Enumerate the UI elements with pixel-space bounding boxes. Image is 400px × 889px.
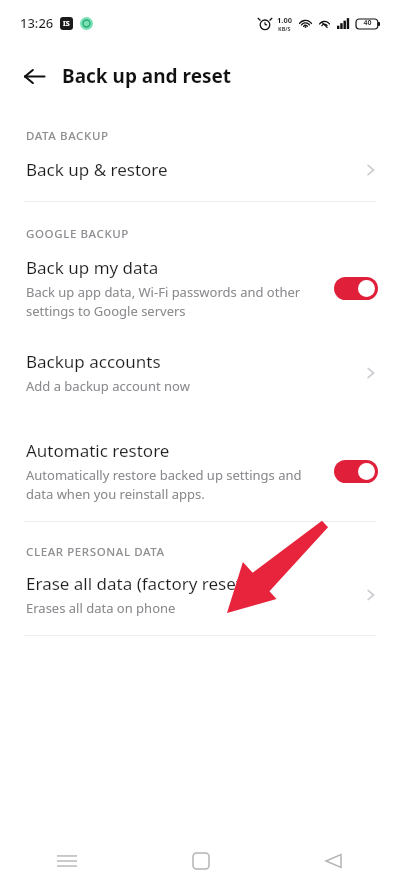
button[interactable]: Toggle Back up my data bbox=[334, 277, 378, 300]
staticText: Erases all data on phone bbox=[26, 599, 176, 617]
button[interactable]: Back bbox=[267, 833, 400, 889]
staticText: Back up app data, Wi-Fi passwords and ot… bbox=[26, 283, 301, 320]
staticText: Backup accounts bbox=[26, 350, 161, 373]
staticText: Back up & restore bbox=[26, 158, 168, 181]
staticText: Back up my data bbox=[26, 256, 159, 279]
button[interactable]: Erase all data (factory reset) bbox=[0, 560, 400, 635]
button[interactable]: Backup accounts bbox=[0, 324, 400, 413]
button[interactable]: Home bbox=[134, 833, 267, 889]
staticText: DATA BACKUP bbox=[26, 128, 109, 144]
button[interactable]: Recent apps bbox=[0, 833, 134, 889]
staticText: 13:26 bbox=[20, 14, 54, 32]
button[interactable]: Back bbox=[14, 56, 54, 96]
staticText: IS bbox=[63, 19, 70, 29]
staticText: GOOGLE BACKUP bbox=[26, 226, 129, 242]
button[interactable]: Back up my data bbox=[0, 242, 400, 324]
staticText: 40 bbox=[363, 18, 372, 28]
staticText: CLEAR PERSONAL DATA bbox=[26, 544, 165, 560]
staticText: Erase all data (factory reset) bbox=[26, 572, 248, 595]
staticText: 1.00 bbox=[277, 15, 292, 25]
staticText: Add a backup account now bbox=[26, 377, 190, 395]
staticText: KB/S bbox=[278, 25, 291, 32]
button[interactable]: Back up & restore bbox=[0, 144, 400, 201]
button[interactable]: Automatic restore bbox=[0, 413, 400, 507]
staticText: Automatically restore backed up settings… bbox=[26, 466, 302, 503]
button[interactable]: Toggle Automatic restore bbox=[334, 460, 378, 483]
staticText: Automatic restore bbox=[26, 439, 170, 462]
staticText: Back up and reset bbox=[62, 63, 232, 89]
